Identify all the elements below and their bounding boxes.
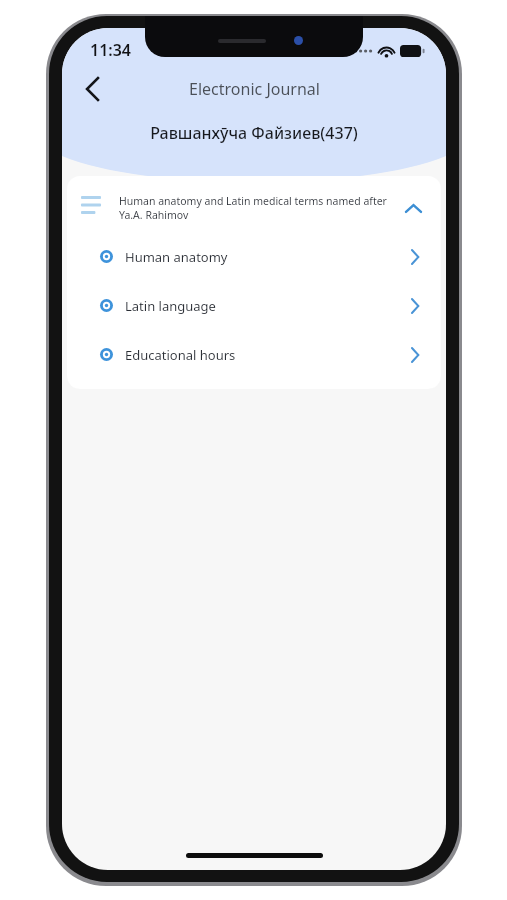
button[interactable]: Collapse xyxy=(399,194,427,222)
staticText: Равшанхӯча Файзиев(437) xyxy=(78,122,430,144)
staticText: Human anatomy and Latin medical terms na… xyxy=(119,194,389,222)
staticText: Human anatomy xyxy=(125,248,411,266)
button[interactable]: Human anatomy xyxy=(67,232,441,281)
button[interactable]: Educational hours xyxy=(67,330,441,379)
button[interactable]: Human anatomy and Latin medical terms na… xyxy=(67,176,441,232)
staticText: Educational hours xyxy=(125,346,411,364)
staticText: 11:34 xyxy=(90,39,132,61)
staticText: Latin language xyxy=(125,297,411,315)
button[interactable]: Back xyxy=(72,69,112,109)
staticText: Electronic Journal xyxy=(189,78,320,100)
button[interactable]: Latin language xyxy=(67,281,441,330)
